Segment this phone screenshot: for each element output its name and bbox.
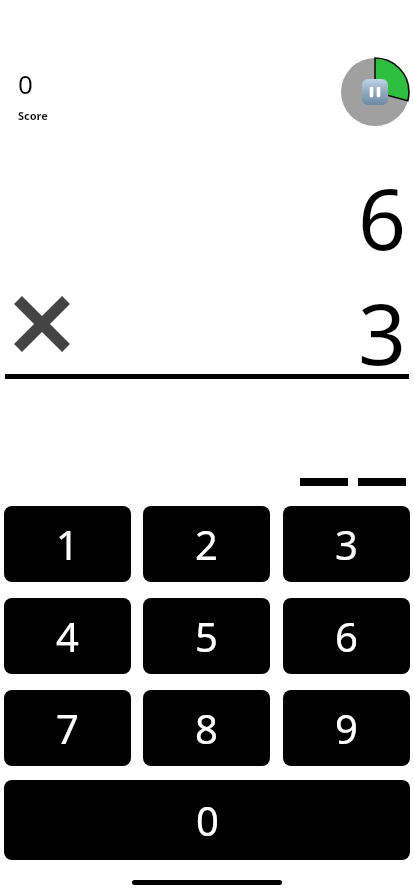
button[interactable]: 6 (283, 598, 410, 674)
other: Multiply (14, 296, 70, 352)
button[interactable]: Pause timer (341, 58, 409, 126)
staticText: 7 (56, 701, 79, 755)
button[interactable]: 0 (10, 66, 100, 128)
button[interactable]: 3 (283, 506, 410, 582)
staticText: 4 (56, 609, 79, 663)
staticText: 0 (196, 793, 219, 847)
button[interactable]: 0 (4, 780, 410, 860)
staticText: Score (18, 108, 48, 123)
button[interactable]: 4 (4, 598, 131, 674)
staticText: 8 (195, 701, 218, 755)
button[interactable]: 2 (143, 506, 270, 582)
button[interactable]: 7 (4, 690, 131, 766)
staticText: 6 (335, 609, 358, 663)
staticText: 3 (335, 517, 358, 571)
staticText: 2 (195, 517, 218, 571)
staticText: 1 (56, 517, 79, 571)
button[interactable]: 1 (4, 506, 131, 582)
staticText: 6 (357, 160, 406, 260)
staticText: 9 (335, 701, 358, 755)
button[interactable]: 8 (143, 690, 270, 766)
staticText: 5 (195, 609, 218, 663)
staticText: 0 (18, 66, 33, 101)
staticText: 3 (357, 275, 406, 375)
button[interactable]: 5 (143, 598, 270, 674)
button[interactable]: 9 (283, 690, 410, 766)
